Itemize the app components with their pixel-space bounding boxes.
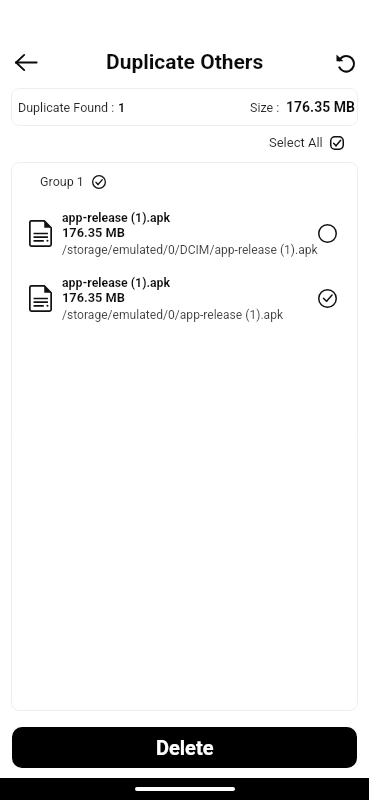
staticText: app-release (1).apk	[62, 276, 171, 290]
staticText: /storage/emulated/0/app-release (1).apk	[62, 308, 284, 322]
staticText: /storage/emulated/0/DCIM/app-release (1)…	[62, 243, 316, 257]
staticText: Duplicate Others	[106, 50, 264, 75]
staticText: 176.35 MB	[62, 290, 125, 305]
staticText: 176.35 MB	[62, 225, 125, 240]
button[interactable]: Not selected	[314, 220, 340, 246]
button[interactable]: Delete	[12, 727, 357, 768]
staticText: app-release (1).apk	[62, 211, 171, 225]
button[interactable]: app-release (1).apk	[11, 211, 358, 257]
staticText: Delete	[156, 736, 214, 759]
button[interactable]: Refresh	[332, 49, 359, 76]
staticText: 176.35 MB	[286, 99, 355, 115]
button[interactable]: Selected	[314, 285, 340, 311]
staticText: Group 1	[40, 174, 84, 189]
staticText: Size :	[250, 100, 283, 115]
button[interactable]: Group 1	[37, 171, 109, 192]
staticText: Duplicate Found :	[18, 100, 118, 115]
button[interactable]: Select All	[266, 132, 347, 153]
staticText: Select All	[269, 135, 323, 150]
staticText: 1	[118, 100, 126, 115]
button[interactable]: Back	[14, 50, 39, 75]
button[interactable]: app-release (1).apk	[11, 276, 358, 322]
